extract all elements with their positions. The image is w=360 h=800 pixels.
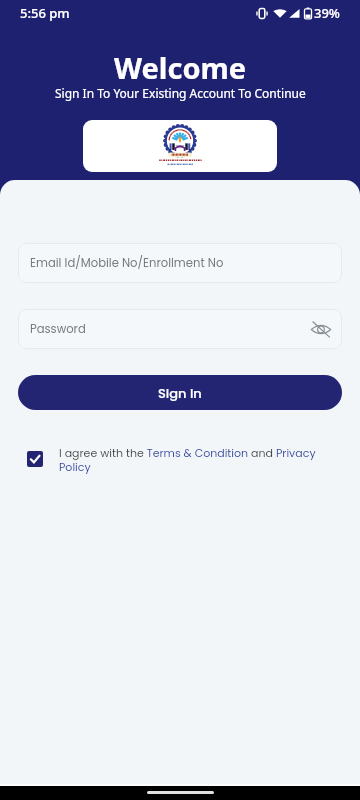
staticText: Sign In To Your Existing Account To Cont… <box>55 85 306 101</box>
staticText: I agree with the Terms & Condition and P… <box>59 445 340 474</box>
staticText: 5:56 pm <box>20 4 70 22</box>
staticText: 39% <box>314 4 340 22</box>
staticText: Password <box>30 321 86 337</box>
button[interactable]: Email Id/Mobile No/Enrollment No <box>18 243 342 283</box>
button[interactable]: Password <box>18 309 342 349</box>
button[interactable]: Agree to terms checkbox <box>27 451 43 467</box>
staticText: Welcome <box>114 48 247 87</box>
staticText: Email Id/Mobile No/Enrollment No <box>30 255 224 271</box>
button[interactable]: Sign in <box>18 375 342 410</box>
staticText: Sign in <box>158 384 202 402</box>
button[interactable]: Toggle password visibility <box>310 318 332 340</box>
